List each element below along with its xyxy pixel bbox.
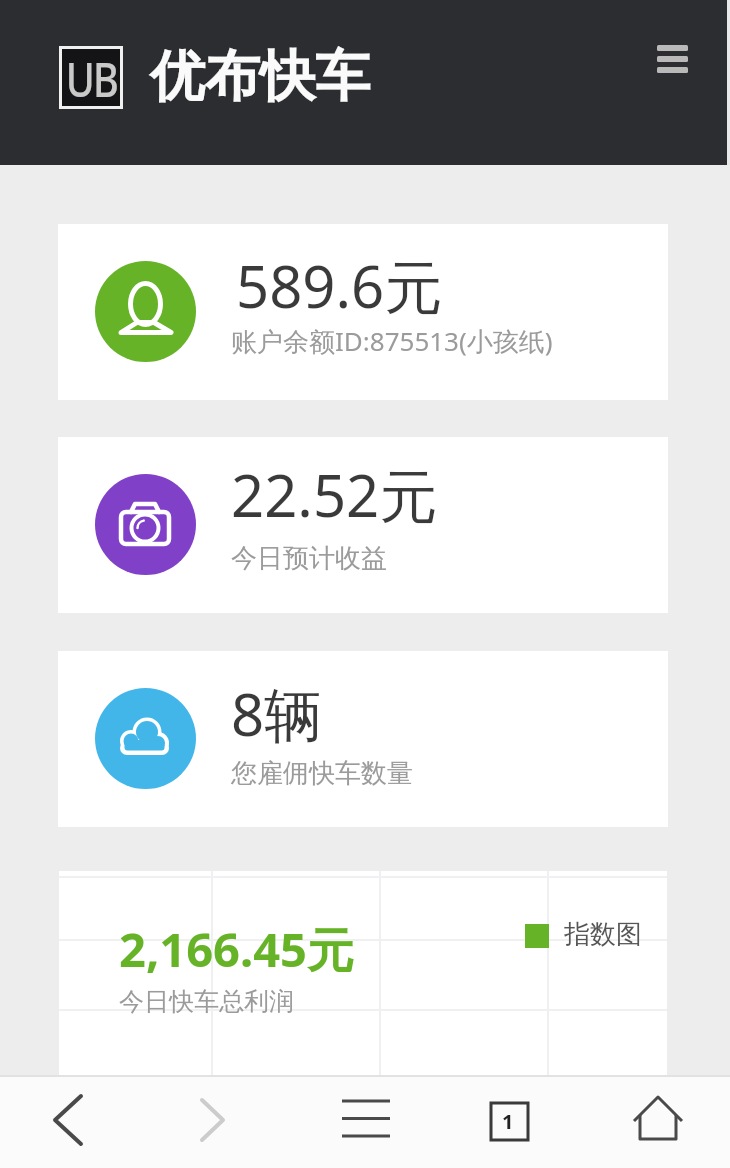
button[interactable] (610, 1077, 698, 1165)
button[interactable] (58, 437, 668, 613)
button[interactable] (24, 1077, 112, 1165)
button[interactable]: UB (59, 46, 123, 109)
staticText: 2,166.45元 (119, 917, 354, 981)
staticText: 账户余额ID:875513(小孩纸) (231, 323, 553, 359)
button[interactable] (58, 651, 668, 827)
button[interactable] (650, 38, 695, 80)
staticText: 您雇佣快车数量 (231, 757, 413, 790)
button[interactable] (173, 1077, 261, 1165)
staticText: 指数图 (564, 918, 642, 951)
staticText: 8辆 (231, 674, 323, 753)
staticText: 589.6元 (236, 246, 443, 325)
staticText: 今日预计收益 (231, 542, 387, 575)
staticText: UB (66, 46, 117, 109)
staticText: 22.52元 (231, 455, 438, 534)
staticText: 1 (502, 1108, 514, 1135)
button[interactable] (464, 1077, 552, 1165)
staticText: 今日快车总利润 (119, 986, 294, 1017)
staticText: 优布快车 (150, 42, 370, 111)
button[interactable] (58, 224, 668, 400)
button[interactable] (322, 1077, 410, 1165)
